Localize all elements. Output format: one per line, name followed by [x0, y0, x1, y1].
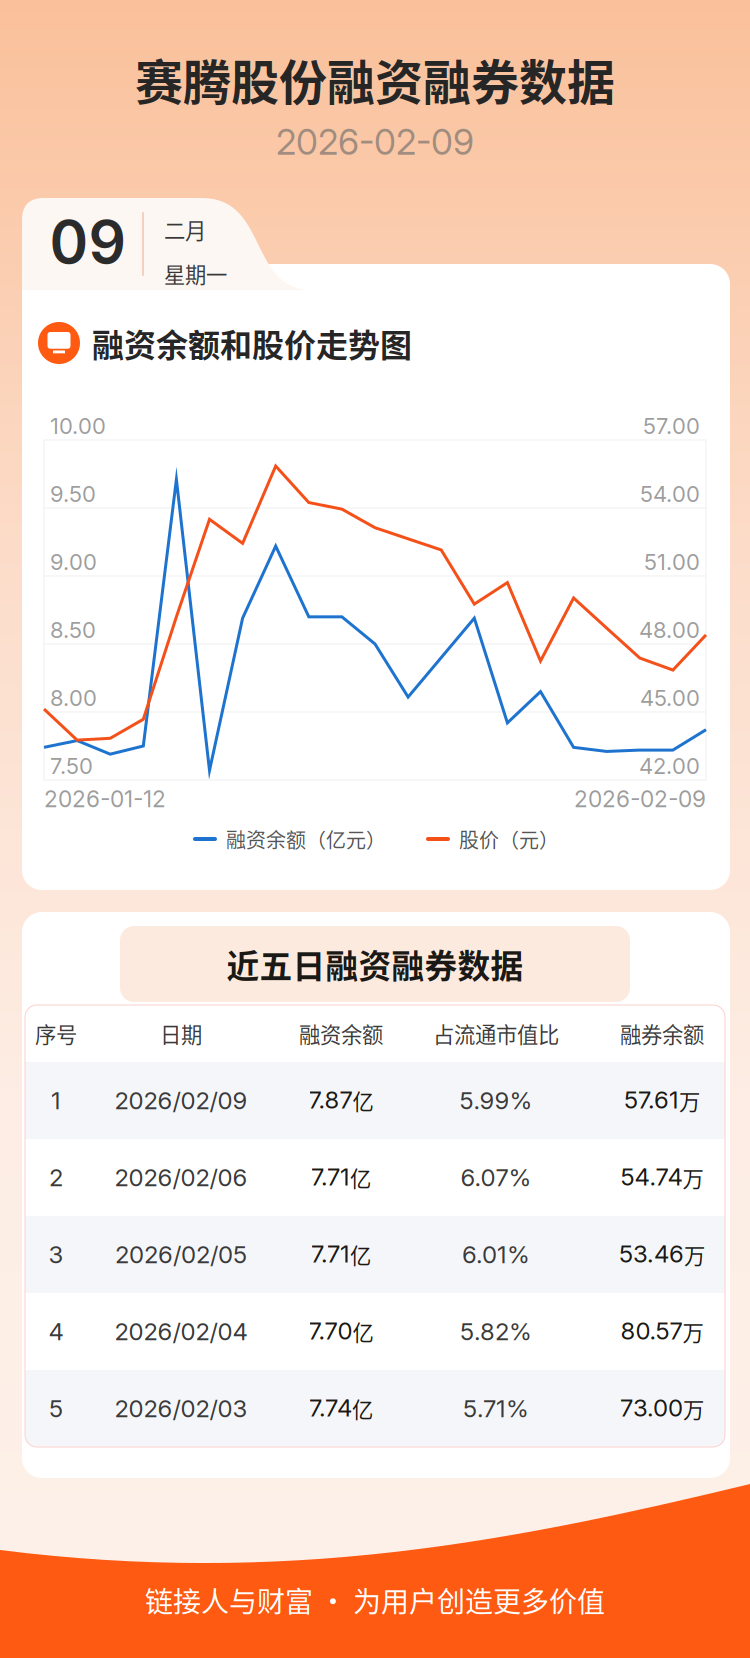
staticText: 7.74亿 — [309, 1393, 373, 1423]
staticText: 赛腾股份融资融券数据 — [135, 44, 615, 114]
staticText: 2026/02/04 — [114, 1317, 247, 1346]
staticText: 融资余额 — [299, 1018, 383, 1049]
staticText: 8.50 — [50, 617, 96, 643]
staticText: 09 — [49, 206, 126, 277]
staticText: 2026/02/03 — [114, 1394, 247, 1423]
staticText: 2026/02/06 — [114, 1163, 247, 1192]
staticText: 融券余额 — [620, 1018, 704, 1049]
staticText: 80.57万 — [620, 1316, 703, 1346]
staticText: 9.00 — [50, 549, 97, 575]
staticText: 1 — [51, 1086, 61, 1115]
staticText: 6.01% — [462, 1240, 530, 1269]
staticText: 9.50 — [50, 481, 96, 507]
staticText: 7.71亿 — [311, 1239, 371, 1269]
staticText: 42.00 — [639, 753, 700, 779]
staticText: 7.87亿 — [308, 1085, 373, 1115]
staticText: 5.82% — [460, 1317, 532, 1346]
staticText: 占流通市值比 — [433, 1018, 559, 1049]
staticText: 51.00 — [644, 549, 700, 575]
staticText: 2 — [49, 1163, 63, 1192]
staticText: 日期 — [160, 1018, 202, 1049]
staticText: 二月 — [164, 214, 206, 245]
staticText: 7.50 — [50, 753, 93, 779]
staticText: 2026/02/09 — [114, 1086, 247, 1115]
staticText: 10.00 — [50, 413, 106, 439]
staticText: 近五日融资融券数据 — [226, 941, 523, 987]
staticText: 股价（元） — [459, 824, 559, 853]
staticText: 53.46万 — [619, 1239, 705, 1269]
staticText: 星期一 — [164, 258, 227, 289]
staticText: 链接人与财富 · 为用户创造更多价值 — [145, 1580, 605, 1620]
staticText: 融资余额（亿元） — [226, 824, 386, 853]
staticText: 73.00万 — [620, 1393, 704, 1423]
staticText: 6.07% — [460, 1163, 531, 1192]
staticText: 2026-02-09 — [276, 121, 474, 163]
staticText: 7.71亿 — [311, 1162, 371, 1192]
staticText: 5.71% — [463, 1394, 529, 1423]
staticText: 57.00 — [643, 413, 700, 439]
staticText: 48.00 — [639, 617, 700, 643]
staticText: 57.61万 — [624, 1085, 700, 1115]
staticText: 2026-02-09 — [574, 785, 706, 813]
staticText: 4 — [48, 1317, 63, 1346]
staticText: 序号 — [35, 1018, 77, 1049]
staticText: 5 — [49, 1394, 63, 1423]
staticText: 融资余额和股价走势图 — [92, 320, 412, 366]
staticText: 8.00 — [50, 685, 97, 711]
staticText: 2026-01-12 — [44, 785, 166, 813]
staticText: 7.70亿 — [308, 1316, 373, 1346]
staticText: 2026/02/05 — [115, 1240, 247, 1269]
staticText: 3 — [48, 1240, 63, 1269]
staticText: 5.99% — [459, 1086, 532, 1115]
staticText: 54.00 — [640, 481, 700, 507]
staticText: 45.00 — [640, 685, 700, 711]
staticText: 54.74万 — [620, 1162, 703, 1192]
